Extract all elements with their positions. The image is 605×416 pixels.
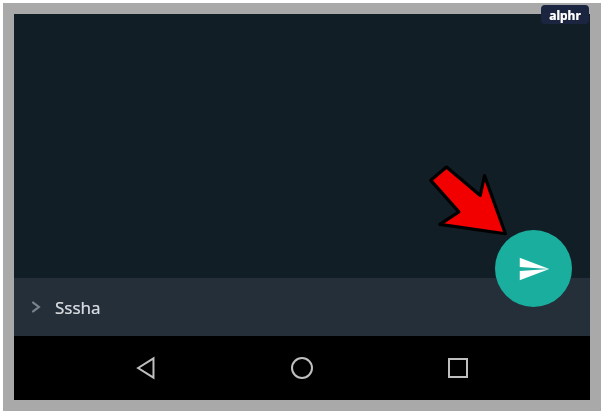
- staticText: Sssha: [55, 296, 101, 319]
- button[interactable]: Sssha: [14, 278, 590, 336]
- button[interactable]: Home: [278, 344, 326, 392]
- button[interactable]: Recent apps: [434, 344, 482, 392]
- button[interactable]: Back: [122, 344, 170, 392]
- button[interactable]: Send: [495, 230, 572, 307]
- staticText: alphr: [549, 7, 581, 23]
